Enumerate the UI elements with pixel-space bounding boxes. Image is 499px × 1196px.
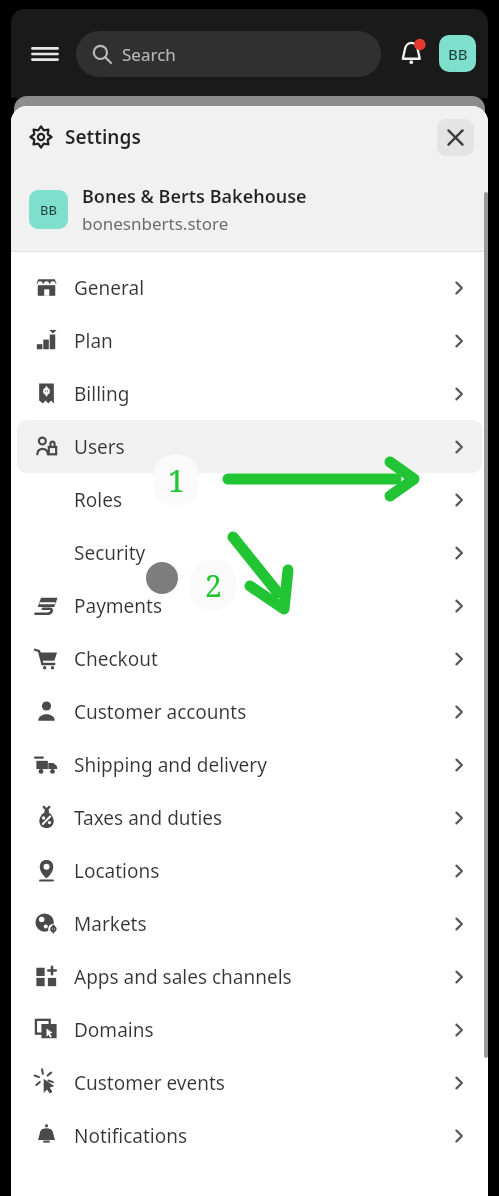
button[interactable]: Security [17, 526, 482, 579]
staticText: bonesnberts.store [82, 212, 229, 235]
button[interactable]: Menu [23, 32, 67, 76]
staticText: Security [74, 540, 146, 566]
staticText: 1 [168, 460, 185, 501]
staticText: Locations [74, 858, 160, 884]
button[interactable]: Roles [17, 473, 482, 526]
button[interactable]: Apps and sales channels [17, 950, 482, 1003]
button[interactable]: Markets [17, 897, 482, 950]
button[interactable]: Plan [17, 314, 482, 367]
staticText: Roles [74, 487, 123, 513]
staticText: General [74, 275, 145, 301]
staticText: Customer events [74, 1070, 225, 1096]
button[interactable]: Billing [17, 367, 482, 420]
staticText: Notifications [74, 1123, 188, 1149]
staticText: Users [74, 434, 125, 460]
staticText: Payments [74, 593, 163, 619]
button[interactable]: Search [76, 31, 381, 77]
staticText: Search [122, 43, 176, 66]
button[interactable]: Users [17, 420, 482, 473]
button[interactable]: Domains [17, 1003, 482, 1056]
staticText: Shipping and delivery [74, 752, 267, 778]
button[interactable]: Close [437, 119, 474, 156]
button[interactable]: Customer accounts [17, 685, 482, 738]
button[interactable]: General [17, 261, 482, 314]
staticText: BB [448, 44, 468, 64]
staticText: Bones & Berts Bakehouse [82, 184, 307, 209]
staticText: Checkout [74, 646, 158, 672]
staticText: 2 [205, 565, 222, 606]
staticText: Taxes and duties [74, 805, 223, 831]
button[interactable]: Notifications [17, 1109, 482, 1162]
button[interactable]: Checkout [17, 632, 482, 685]
button[interactable]: BB [439, 35, 476, 72]
staticText: Markets [74, 911, 147, 937]
staticText: Domains [74, 1017, 154, 1043]
button[interactable]: Taxes and duties [17, 791, 482, 844]
button[interactable]: Customer events [17, 1056, 482, 1109]
staticText: BB [40, 201, 58, 219]
staticText: Customer accounts [74, 699, 247, 725]
button[interactable]: BB [11, 168, 488, 251]
button[interactable]: Shipping and delivery [17, 738, 482, 791]
button[interactable]: Locations [17, 844, 482, 897]
staticText: Apps and sales channels [74, 964, 292, 990]
button[interactable]: Notifications [391, 32, 435, 76]
staticText: Billing [74, 381, 130, 407]
staticText: Settings [65, 124, 141, 150]
button[interactable]: Payments [17, 579, 482, 632]
staticText: Plan [74, 328, 113, 354]
